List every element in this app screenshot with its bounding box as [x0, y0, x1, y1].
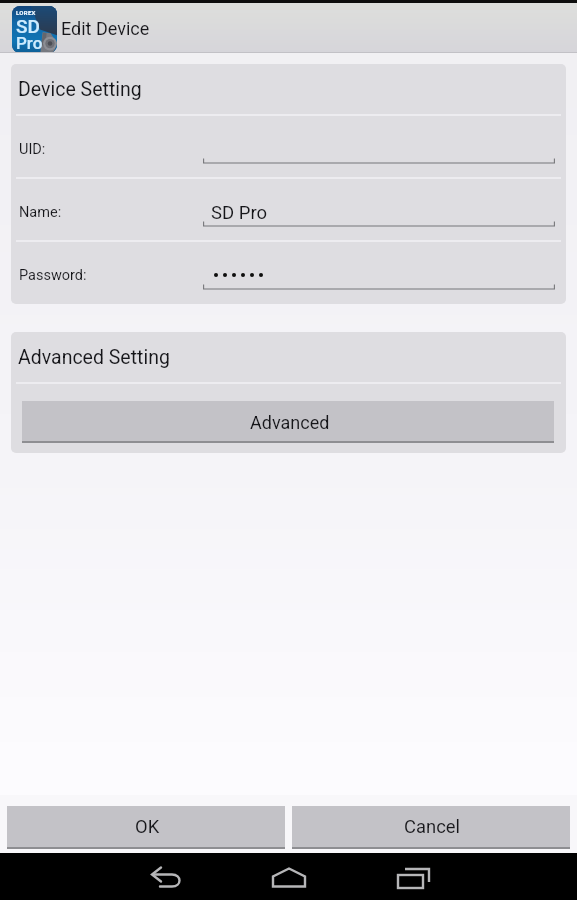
staticText: Edit Device [61, 18, 150, 39]
staticText: SD Pro [211, 202, 268, 224]
button[interactable]: Name: [11, 178, 566, 241]
staticText: OK [135, 816, 160, 838]
staticText: Advanced [250, 412, 330, 433]
button[interactable]: Cancel [292, 806, 570, 849]
button[interactable]: OK [7, 806, 285, 849]
staticText: Pro [16, 33, 43, 51]
staticText: SD [16, 15, 40, 37]
staticText: Password: [19, 267, 87, 284]
staticText: UID: [19, 141, 46, 158]
staticText: Cancel [404, 816, 460, 838]
button[interactable]: Back [143, 853, 191, 900]
button[interactable]: UID: [11, 115, 566, 178]
staticText: LOREX [16, 9, 36, 16]
staticText: Advanced Setting [18, 346, 170, 369]
staticText: Name: [19, 204, 62, 221]
button[interactable]: Recent apps [390, 853, 438, 900]
staticText: Device Setting [18, 78, 142, 101]
button[interactable]: Advanced [22, 401, 554, 443]
button[interactable]: Navigate up: Edit Device [0, 3, 200, 53]
button[interactable]: Password: [11, 241, 566, 304]
button[interactable]: Home [265, 853, 313, 900]
